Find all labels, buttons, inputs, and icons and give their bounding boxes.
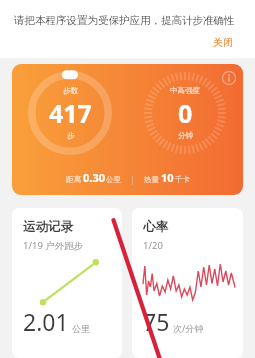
button[interactable]: Info bbox=[12, 64, 243, 195]
staticText: 心率 bbox=[143, 219, 168, 235]
staticText: 0.30 bbox=[83, 170, 105, 185]
staticText: 请把本程序设置为受保护应用，提高计步准确性 bbox=[14, 14, 235, 27]
staticText: 1/19 户外跑步 bbox=[23, 239, 84, 252]
staticText: 2.01 bbox=[23, 306, 69, 337]
button[interactable]: 心率 bbox=[132, 208, 243, 358]
staticText: 关闭 bbox=[213, 36, 233, 49]
staticText: 75 bbox=[143, 306, 170, 337]
staticText: 千卡 bbox=[175, 175, 190, 184]
staticText: 运动记录 bbox=[23, 219, 73, 235]
staticText: 步数 bbox=[63, 86, 78, 95]
staticText: 分钟 bbox=[178, 131, 193, 140]
button[interactable]: 运动记录 bbox=[12, 208, 122, 358]
staticText: 0 bbox=[178, 96, 193, 130]
staticText: 公里 bbox=[72, 323, 90, 334]
staticText: 热量 bbox=[144, 175, 159, 184]
staticText: 中高强度 bbox=[170, 86, 200, 95]
button[interactable]: 关闭 bbox=[205, 33, 241, 52]
staticText: 距离 bbox=[66, 175, 81, 184]
staticText: 10 bbox=[161, 170, 174, 185]
staticText: 417 bbox=[49, 96, 92, 130]
staticText: 公里 bbox=[106, 175, 121, 184]
staticText: 1/20 bbox=[143, 239, 163, 252]
button[interactable]: Info bbox=[221, 70, 237, 86]
staticText: 次/分钟 bbox=[173, 322, 204, 334]
staticText: 步 bbox=[67, 131, 75, 140]
